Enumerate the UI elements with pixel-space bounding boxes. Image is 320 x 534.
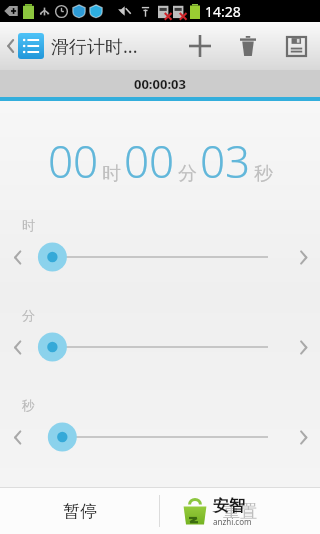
- staticText: 14:28: [205, 2, 241, 21]
- staticText: 时: [22, 217, 35, 233]
- staticText: 00:00:03: [134, 75, 186, 93]
- button[interactable]: 重置: [160, 488, 320, 534]
- button[interactable]: Increase 分: [286, 330, 320, 364]
- staticText: 滑行计时...: [51, 34, 138, 59]
- button[interactable]: Save: [272, 22, 320, 70]
- staticText: 暂停: [63, 501, 97, 522]
- staticText: 03: [200, 131, 251, 191]
- staticText: 重置: [223, 501, 257, 522]
- button[interactable]: Decrease 分: [0, 330, 34, 364]
- staticText: 00: [48, 131, 99, 191]
- staticText: 秒: [254, 162, 273, 186]
- button[interactable]: Increase 秒: [286, 420, 320, 454]
- staticText: anzhi.com: [213, 516, 252, 527]
- staticText: 安智: [213, 496, 245, 516]
- staticText: 分: [22, 307, 35, 323]
- button[interactable]: [34, 239, 286, 275]
- staticText: 分: [178, 162, 197, 186]
- button[interactable]: Decrease 秒: [0, 420, 34, 454]
- staticText: 00: [124, 131, 175, 191]
- button[interactable]: Back: [0, 28, 18, 64]
- button[interactable]: [34, 419, 286, 455]
- button[interactable]: 暂停: [0, 488, 159, 534]
- button[interactable]: Delete: [224, 22, 272, 70]
- button[interactable]: [34, 329, 286, 365]
- staticText: 时: [102, 162, 121, 186]
- button[interactable]: Increase 时: [286, 240, 320, 274]
- button[interactable]: Add: [176, 22, 224, 70]
- button[interactable]: Decrease 时: [0, 240, 34, 274]
- staticText: 秒: [22, 397, 35, 413]
